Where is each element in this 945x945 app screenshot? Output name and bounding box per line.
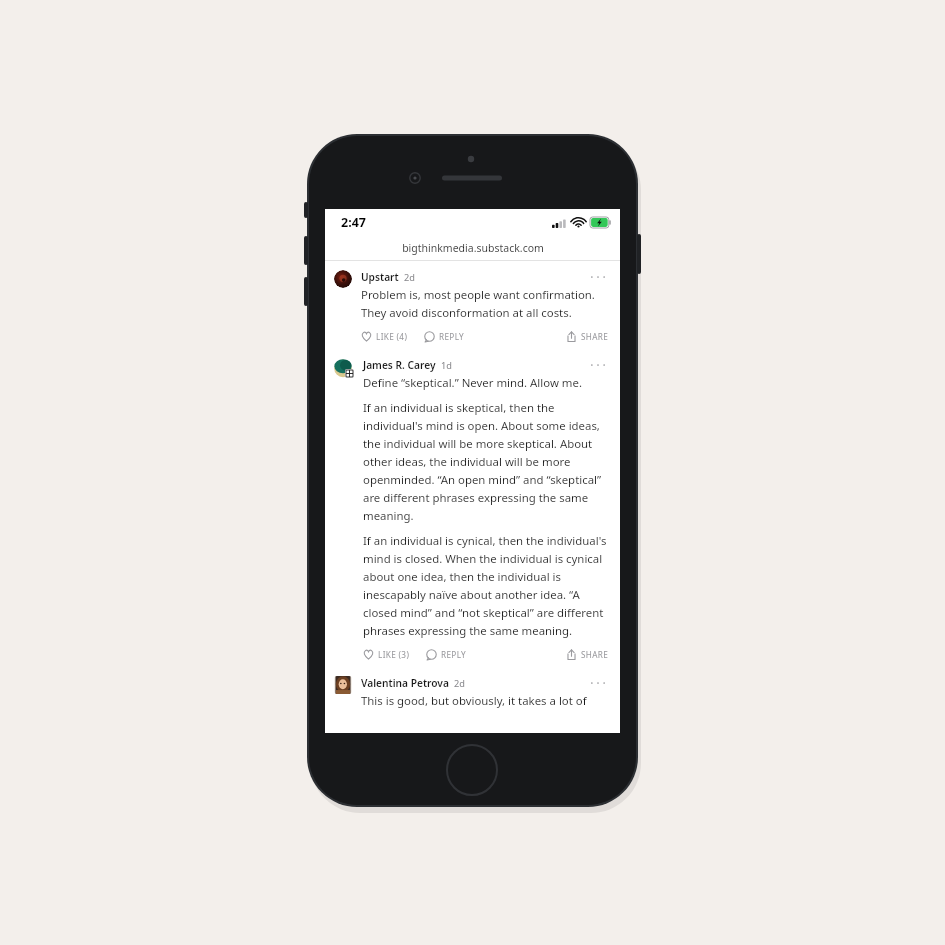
staticText: 2:47 <box>341 214 366 231</box>
staticText: REPLY <box>439 331 465 342</box>
button[interactable]: SHARE <box>566 331 609 342</box>
button[interactable]: Valentina Petrova <box>361 676 449 690</box>
button[interactable]: bigthinkmedia.substack.com <box>325 236 620 260</box>
button[interactable]: REPLY <box>424 331 465 342</box>
button[interactable]: LIKE (4) <box>361 331 408 342</box>
button[interactable]: More options <box>587 269 609 285</box>
staticText: If an individual is skeptical, then the … <box>363 400 609 524</box>
button[interactable]: James R. Carey <box>363 358 436 372</box>
button[interactable]: James R. Carey avatar <box>334 358 354 378</box>
staticText: If an individual is cynical, then the in… <box>363 533 609 639</box>
staticText: bigthinkmedia.substack.com <box>402 241 544 255</box>
staticText: REPLY <box>441 649 467 660</box>
staticText: SHARE <box>581 331 609 342</box>
staticText: Define “skeptical.” Never mind. Allow me… <box>363 375 582 391</box>
button[interactable]: More options <box>587 357 609 373</box>
staticText: Problem is, most people want confirmatio… <box>361 287 609 321</box>
button[interactable]: SHARE <box>566 649 609 660</box>
button[interactable]: Valentina Petrova avatar <box>334 676 352 694</box>
staticText: 2d <box>404 271 415 284</box>
staticText: 2d <box>454 677 465 690</box>
button[interactable]: LIKE (3) <box>363 649 410 660</box>
staticText: This is good, but obviously, it takes a … <box>361 693 587 709</box>
button[interactable]: REPLY <box>426 649 467 660</box>
button[interactable]: More options <box>587 675 609 691</box>
button[interactable]: Upstart avatar <box>334 270 352 288</box>
staticText: LIKE (4) <box>376 331 408 342</box>
staticText: SHARE <box>581 649 609 660</box>
staticText: 1d <box>441 359 452 372</box>
staticText: LIKE (3) <box>378 649 410 660</box>
button[interactable]: Upstart <box>361 270 399 284</box>
